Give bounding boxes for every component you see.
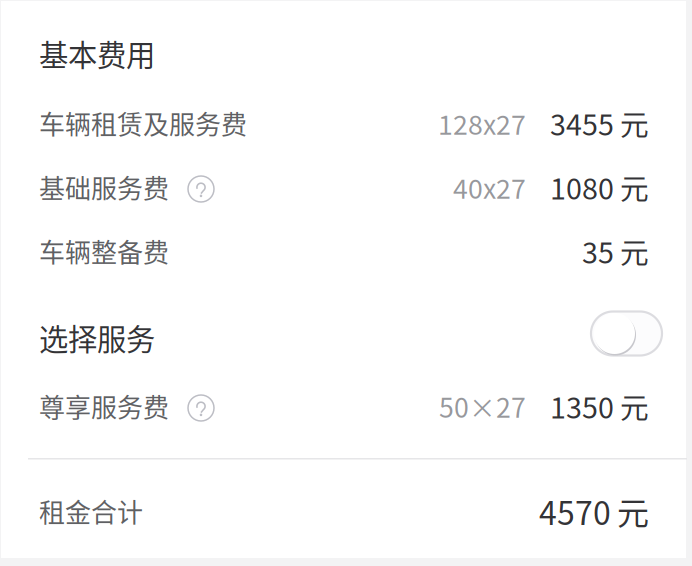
button[interactable]: 费用说明 <box>186 389 216 423</box>
staticText: 尊享服务费 <box>39 387 169 425</box>
staticText: 128x27 <box>438 104 526 142</box>
staticText: 租金合计 <box>39 492 143 530</box>
button[interactable]: 费用说明 <box>186 170 216 204</box>
staticText: 3455 元 <box>550 102 649 144</box>
button[interactable]: 选择服务 <box>591 311 662 355</box>
staticText: 基本费用 <box>39 32 155 74</box>
staticText: 40x27 <box>453 168 526 206</box>
staticText: 车辆整备费 <box>39 232 169 270</box>
staticText: 35 元 <box>582 230 649 272</box>
staticText: 1350 元 <box>550 385 649 427</box>
staticText: 车辆租赁及服务费 <box>39 104 247 142</box>
staticText: 基础服务费 <box>39 168 169 206</box>
staticText: 50×27 <box>439 387 526 425</box>
staticText: 4570 元 <box>539 488 649 534</box>
staticText: 1080 元 <box>550 166 649 208</box>
staticText: 选择服务 <box>39 316 155 359</box>
